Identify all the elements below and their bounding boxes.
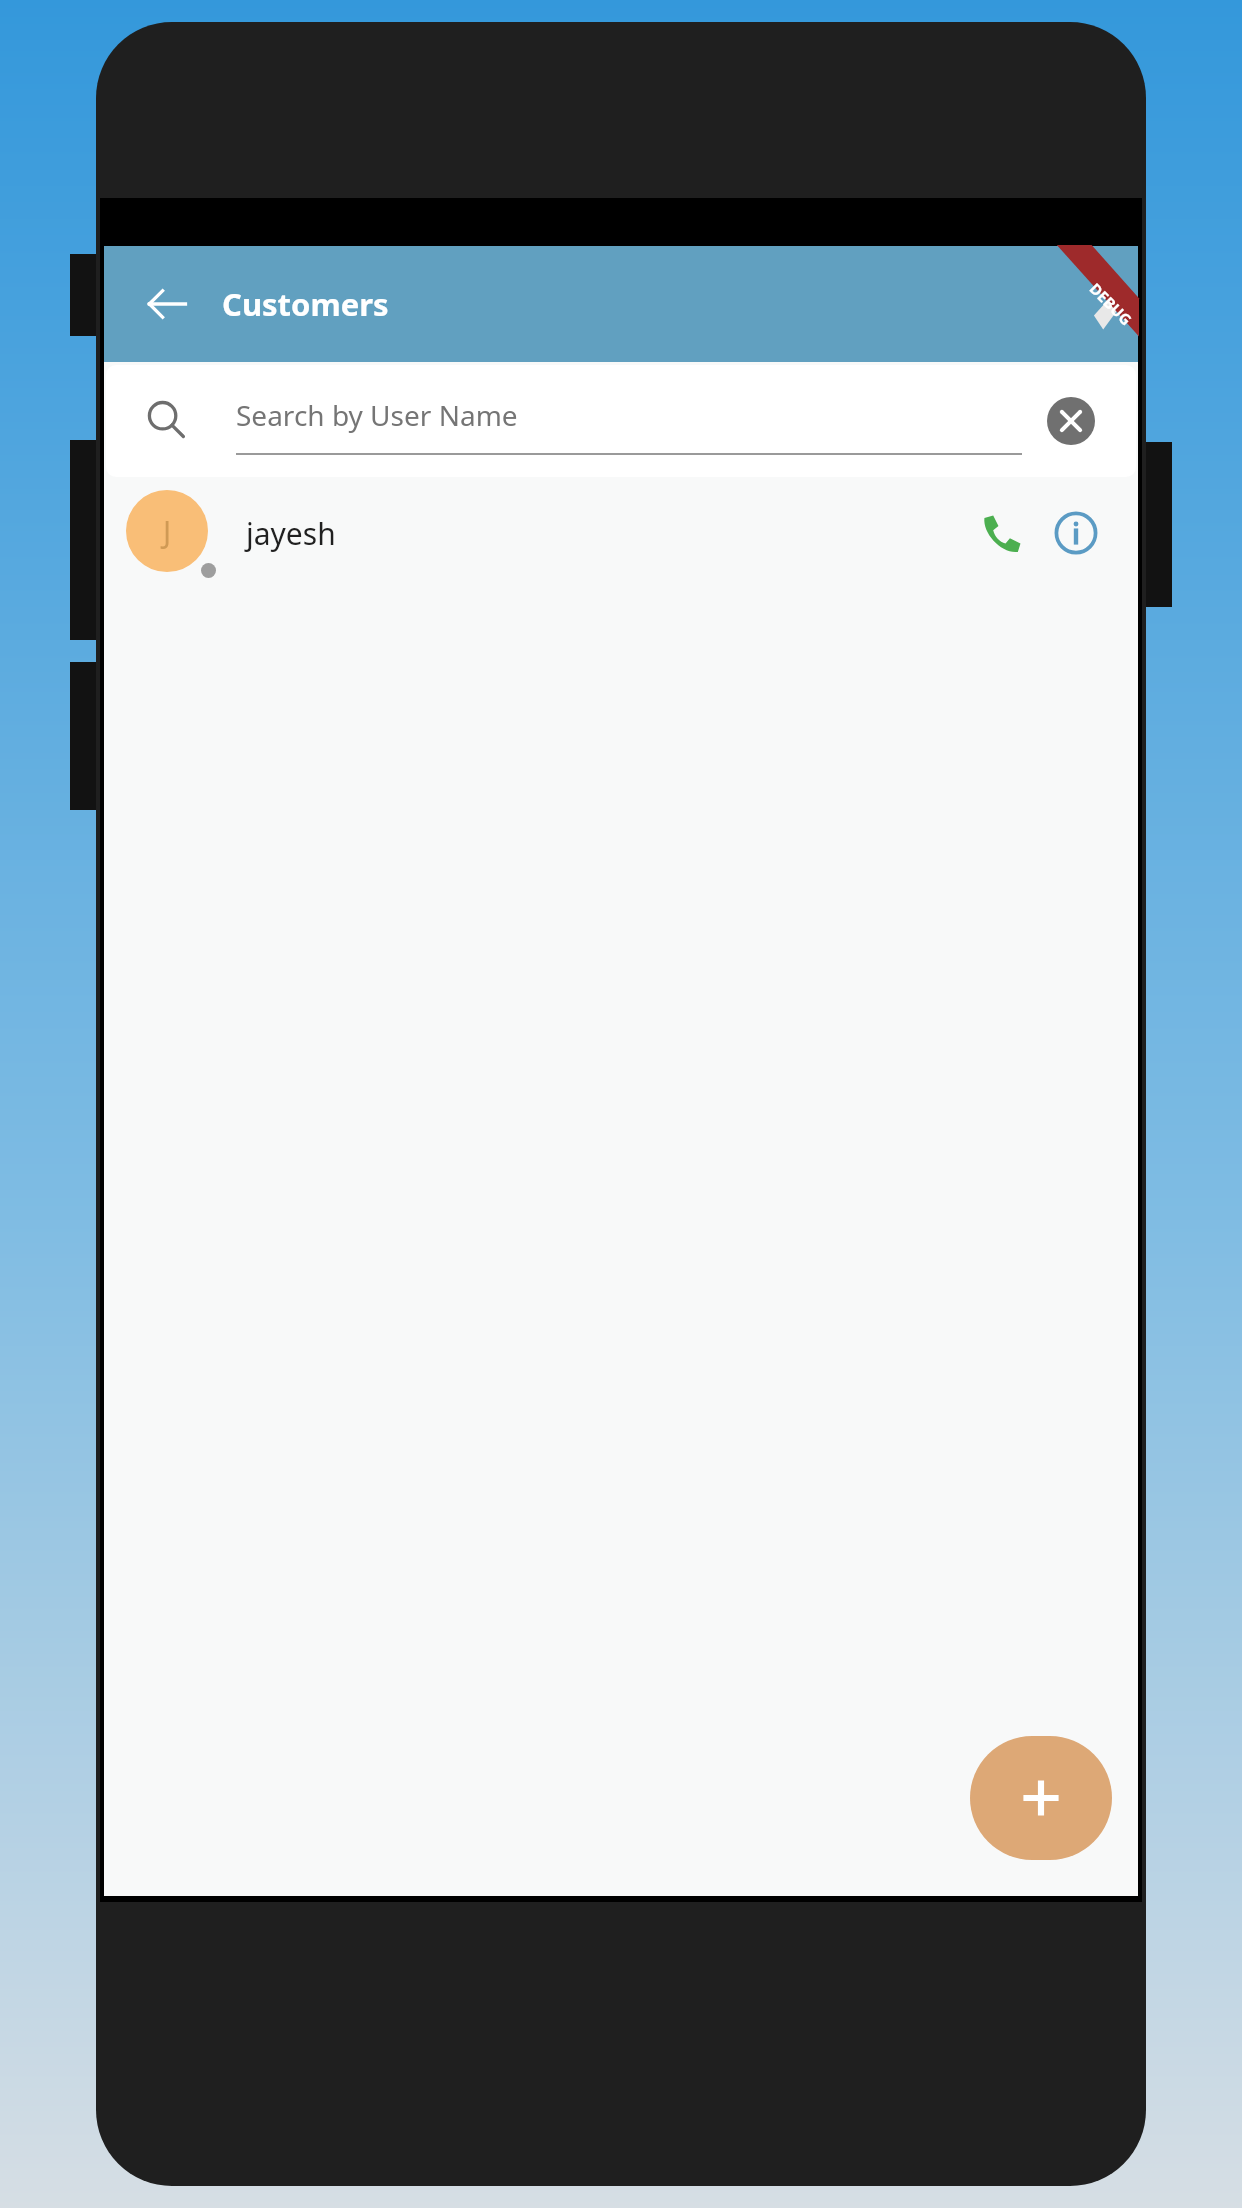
staticText: Search by User Name xyxy=(236,396,518,434)
staticText: Customers xyxy=(222,283,389,325)
button[interactable]: Search xyxy=(106,365,1136,477)
staticText: DEBUG xyxy=(1086,278,1137,329)
button[interactable]: Info xyxy=(1040,497,1112,569)
other: Search xyxy=(140,394,194,448)
button[interactable]: Clear search xyxy=(1042,392,1100,450)
button[interactable]: Back xyxy=(136,273,198,335)
staticText: jayesh xyxy=(246,513,336,554)
staticText: J xyxy=(163,511,172,552)
button[interactable]: J xyxy=(104,480,1138,586)
button[interactable]: Add customer xyxy=(970,1736,1112,1860)
button[interactable]: Call xyxy=(964,495,1040,571)
